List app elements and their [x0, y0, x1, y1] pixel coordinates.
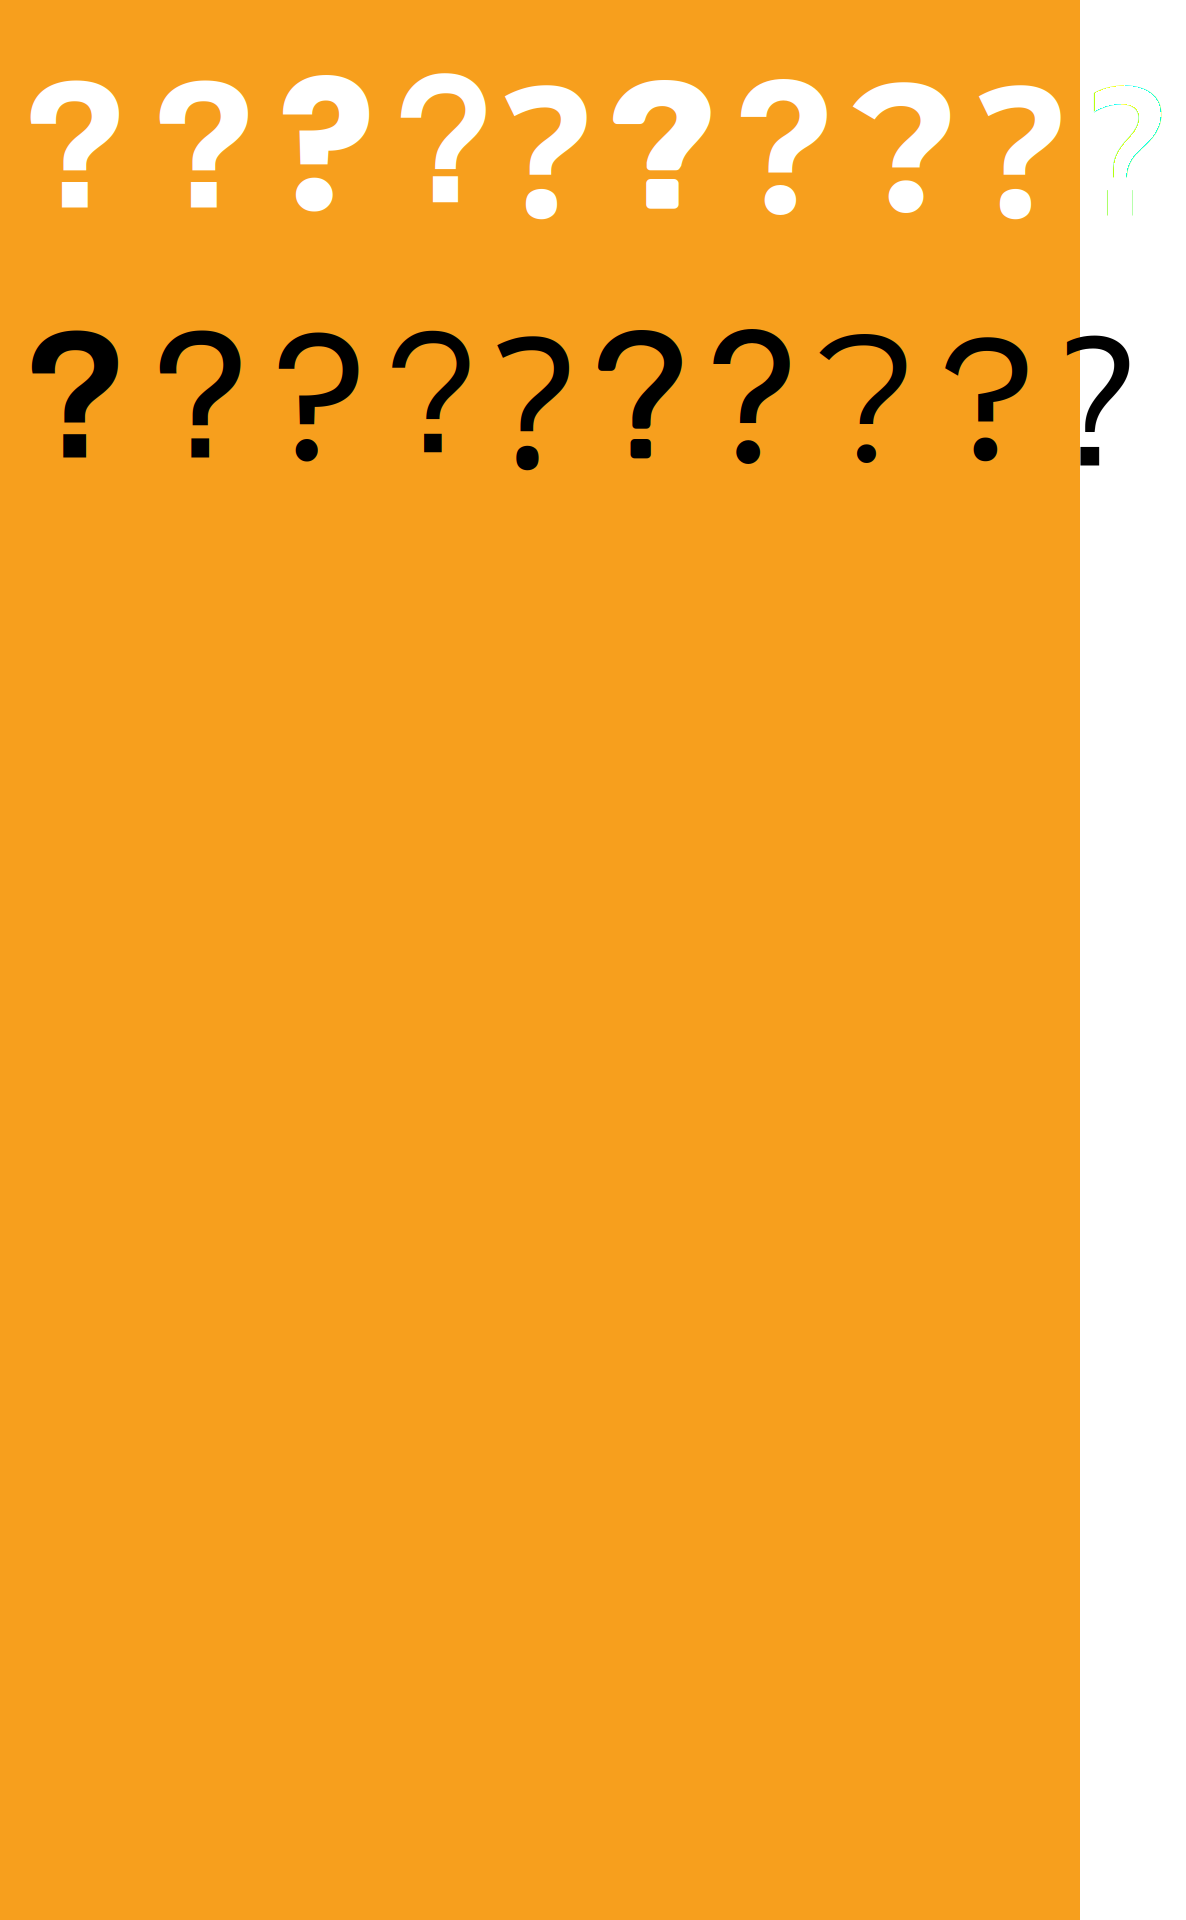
staticText: ? [817, 286, 920, 507]
staticText: ? [938, 291, 1036, 503]
staticText: ? [1082, 33, 1166, 261]
staticText: ? [385, 303, 477, 490]
staticText: ? [592, 289, 688, 504]
staticText: ? [978, 23, 1064, 270]
staticText: ? [149, 48, 260, 246]
staticText: ? [278, 20, 376, 274]
staticText: ? [734, 37, 835, 257]
staticText: ? [394, 53, 486, 240]
staticText: ? [149, 298, 254, 496]
staticText: ? [608, 39, 716, 254]
staticText: ? [272, 270, 367, 524]
staticText: ? [20, 48, 131, 246]
staticText: ? [20, 298, 131, 496]
staticText: ? [504, 23, 590, 270]
staticText: ? [1054, 283, 1135, 511]
staticText: ? [495, 273, 574, 520]
staticText: ? [853, 36, 960, 257]
staticText: ? [706, 287, 799, 507]
